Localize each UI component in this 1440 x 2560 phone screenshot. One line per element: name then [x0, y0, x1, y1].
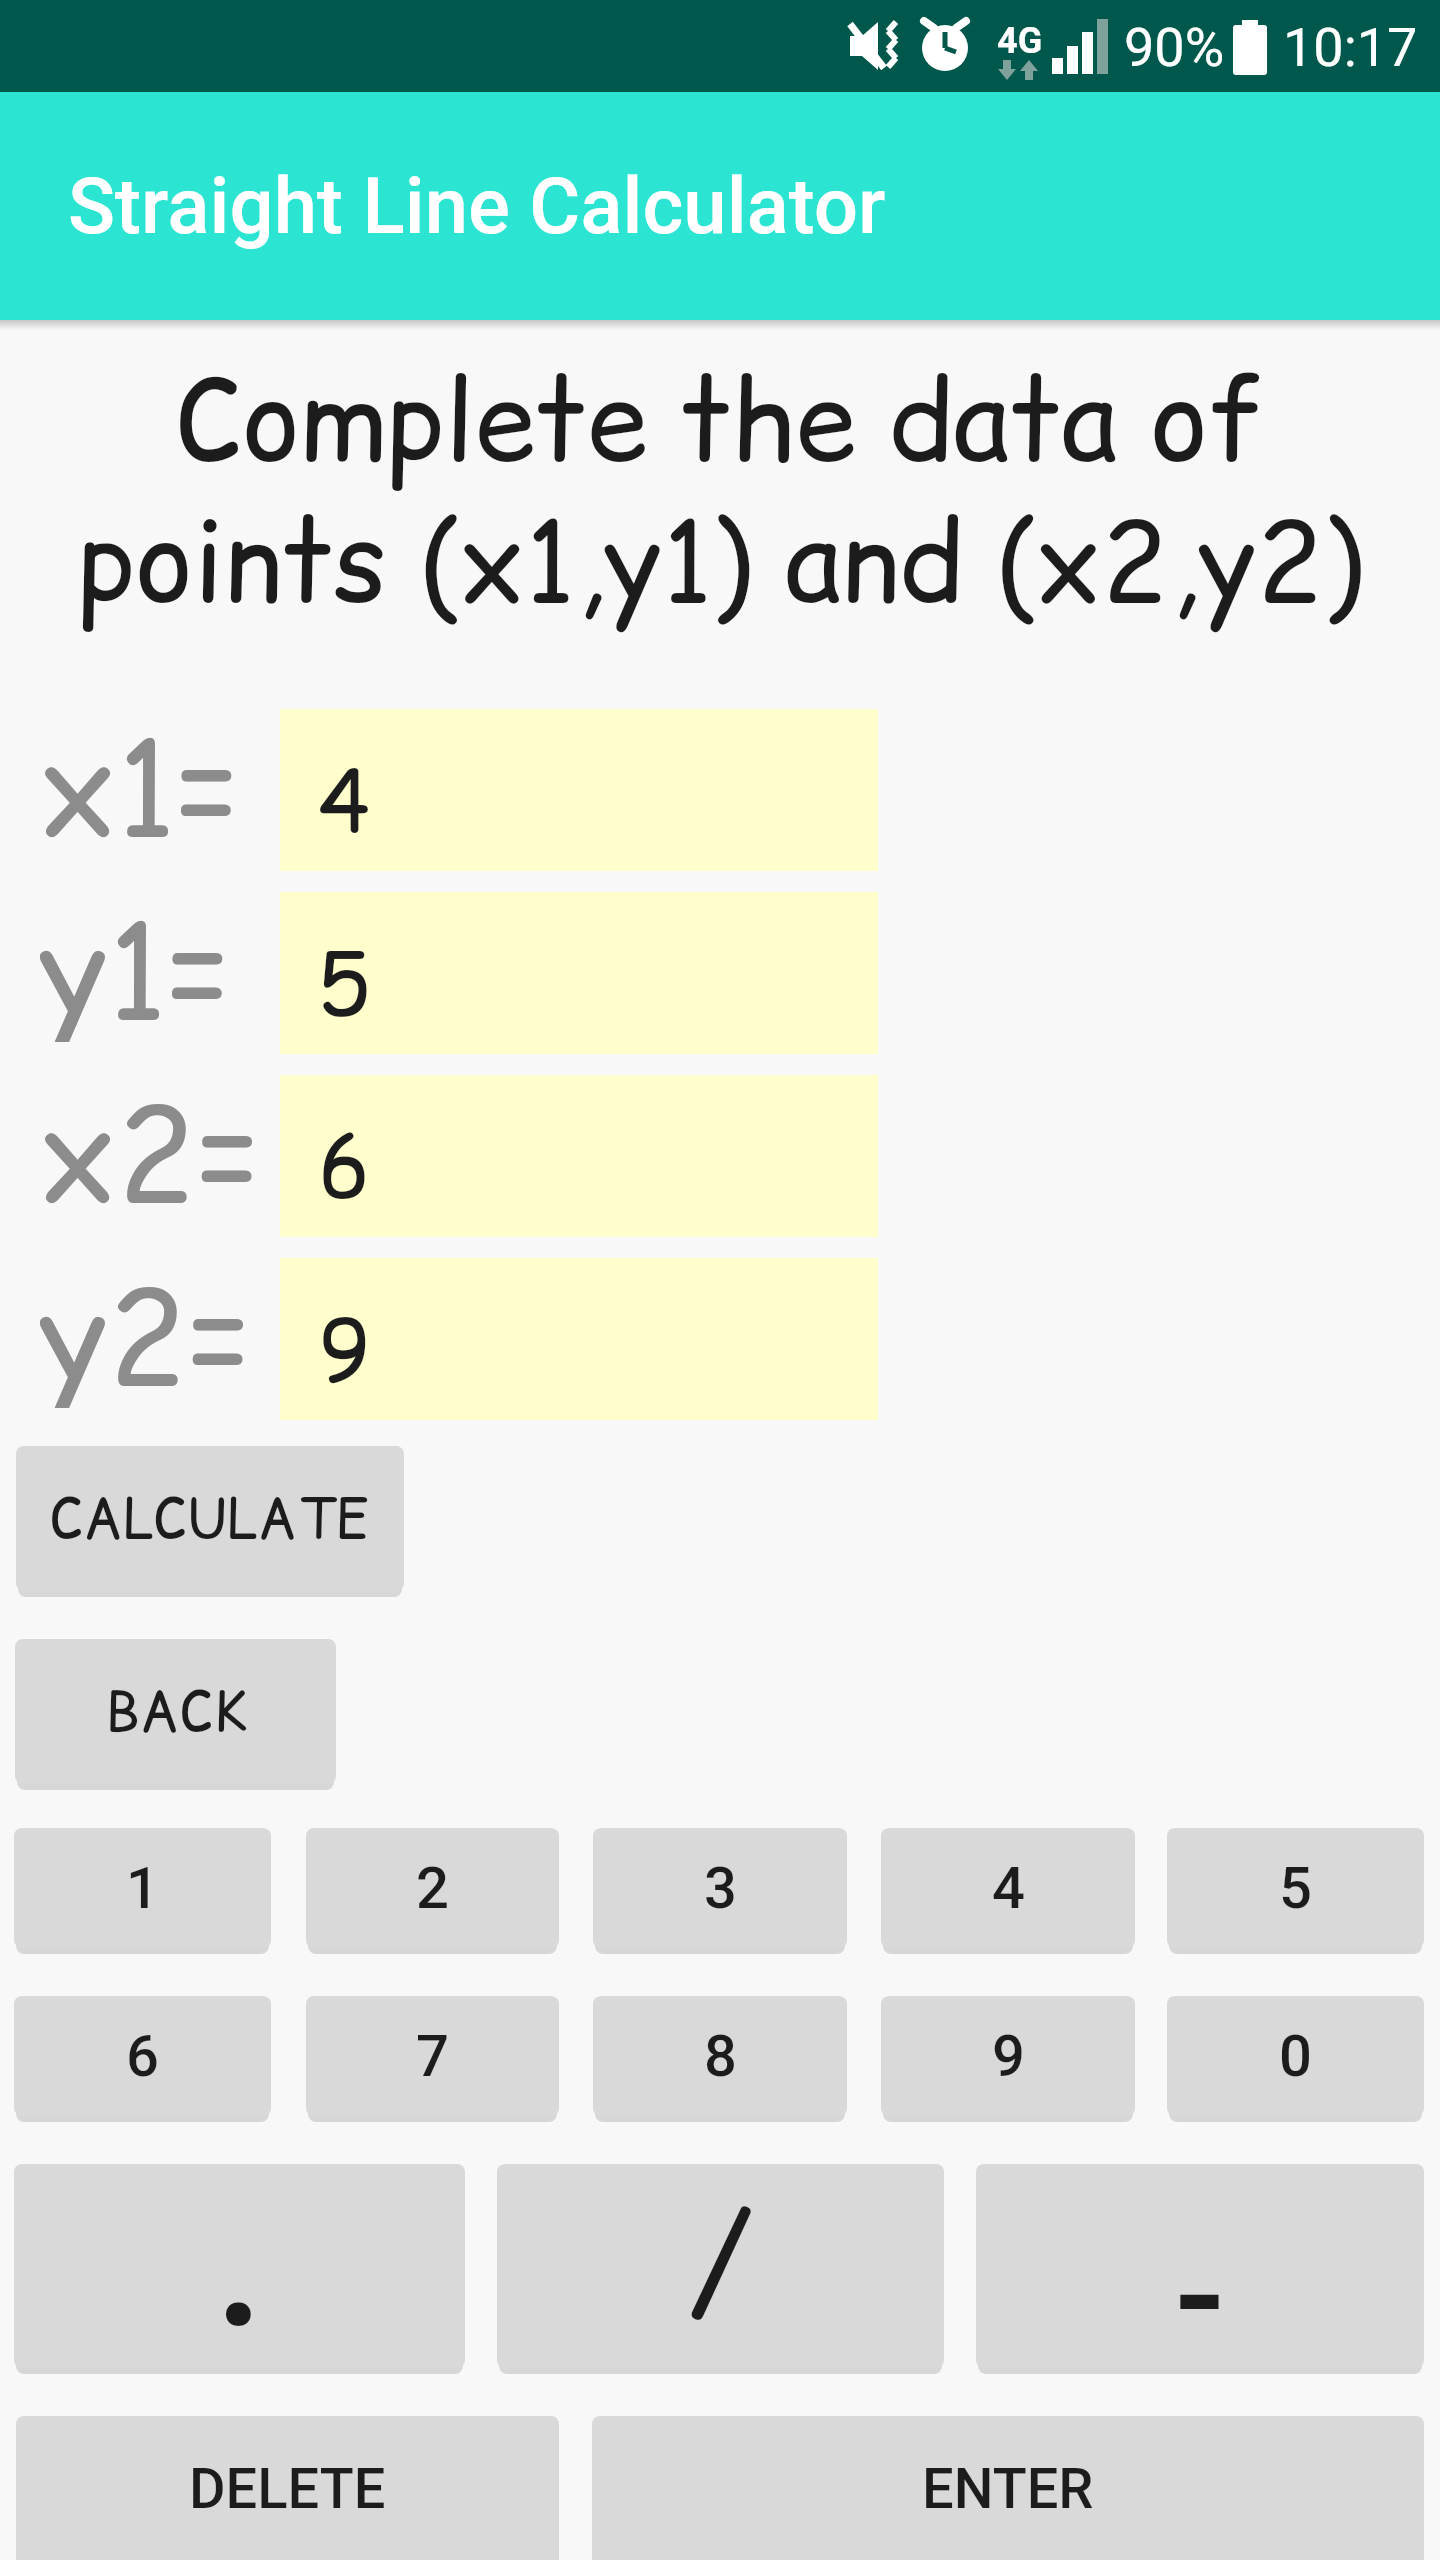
- button[interactable]: 6: [280, 1075, 878, 1237]
- staticText: 6: [318, 1106, 371, 1226]
- button[interactable]: 2: [306, 1828, 559, 1948]
- button[interactable]: DELETE: [16, 2416, 559, 2560]
- staticText: 2: [416, 1854, 449, 1922]
- staticText: 1: [126, 1854, 159, 1922]
- staticText: 8: [704, 2022, 737, 2090]
- button[interactable]: 4: [280, 709, 878, 871]
- staticText: y2=: [40, 1246, 254, 1408]
- button[interactable]: CALCULATE: [16, 1446, 404, 1591]
- staticText: x2=: [40, 1063, 263, 1225]
- staticText: 4G: [997, 20, 1043, 62]
- staticText: /: [686, 2171, 756, 2361]
- button[interactable]: 3: [593, 1828, 847, 1948]
- staticText: BACK: [105, 1673, 247, 1750]
- staticText: y1=: [40, 880, 233, 1042]
- button[interactable]: 5: [1167, 1828, 1424, 1948]
- button[interactable]: 5: [280, 892, 878, 1054]
- button[interactable]: 9: [881, 1996, 1135, 2116]
- staticText: 7: [416, 2022, 449, 2090]
- staticText: 0: [1279, 2022, 1312, 2090]
- staticText: 6: [126, 2022, 159, 2090]
- button[interactable]: .: [14, 2164, 465, 2368]
- button[interactable]: 4: [881, 1828, 1135, 1948]
- staticText: 4: [318, 740, 371, 860]
- button[interactable]: ENTER: [592, 2416, 1424, 2560]
- button[interactable]: 6: [14, 1996, 271, 2116]
- button[interactable]: 8: [593, 1996, 847, 2116]
- staticText: 9: [992, 2022, 1025, 2090]
- staticText: -: [1175, 2208, 1225, 2384]
- button[interactable]: 0: [1167, 1996, 1424, 2116]
- staticText: DELETE: [189, 2456, 386, 2522]
- staticText: Straight Line Calculator: [68, 161, 886, 252]
- staticText: 10:17: [1283, 16, 1418, 79]
- button[interactable]: /: [497, 2164, 944, 2368]
- staticText: CALCULATE: [50, 1480, 370, 1557]
- staticText: 5: [1279, 1854, 1312, 1922]
- staticText: .: [214, 2158, 265, 2362]
- button[interactable]: 7: [306, 1996, 559, 2116]
- staticText: 9: [318, 1289, 371, 1409]
- staticText: x1=: [40, 697, 242, 859]
- button[interactable]: BACK: [15, 1639, 336, 1784]
- staticText: 4: [992, 1854, 1025, 1922]
- button[interactable]: 1: [14, 1828, 271, 1948]
- staticText: 90%: [1124, 16, 1225, 79]
- staticText: 5: [318, 923, 371, 1043]
- button[interactable]: 9: [280, 1258, 878, 1420]
- staticText: ENTER: [922, 2456, 1094, 2522]
- staticText: Complete the data of points (x1,y1) and …: [76, 344, 1364, 638]
- button[interactable]: -: [976, 2164, 1424, 2368]
- staticText: 3: [704, 1854, 737, 1922]
